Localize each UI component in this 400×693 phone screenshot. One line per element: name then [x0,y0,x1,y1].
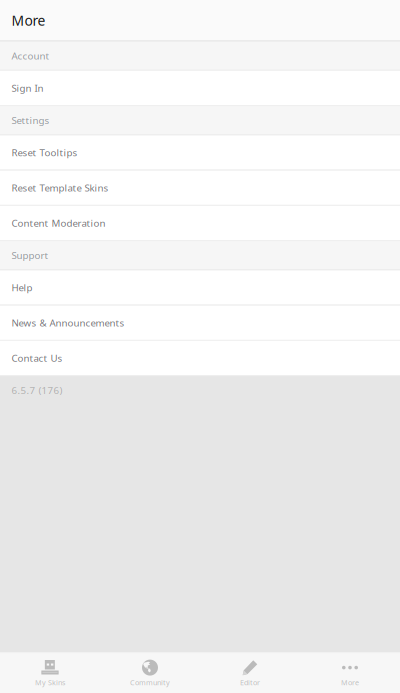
button[interactable]: More [300,653,400,693]
staticText: Editor [240,678,260,687]
staticText: Reset Tooltips [11,146,77,159]
staticText: More [341,678,359,687]
staticText: My Skins [35,678,65,687]
staticText: Reset Template Skins [11,181,108,194]
button[interactable]: Reset Tooltips [0,135,400,170]
button[interactable]: Contact Us [0,341,400,376]
staticText: Account [11,49,49,62]
staticText: Contact Us [11,351,62,365]
button[interactable]: Sign In [0,71,400,106]
button[interactable]: Help [0,270,400,306]
staticText: 6.5.7 (176) [11,383,62,397]
staticText: More [11,11,45,30]
staticText: Help [11,281,32,294]
staticText: Sign In [11,81,43,95]
button[interactable]: My Skins [0,653,100,693]
staticText: Content Moderation [11,216,105,230]
button[interactable]: Reset Template Skins [0,171,400,206]
button[interactable]: Community [100,653,200,693]
staticText: Support [11,249,48,262]
staticText: Community [130,678,170,687]
staticText: News & Announcements [11,316,124,329]
staticText: Settings [11,114,49,127]
button[interactable]: News & Announcements [0,306,400,341]
button[interactable]: Content Moderation [0,206,400,241]
button[interactable]: Editor [200,653,300,693]
